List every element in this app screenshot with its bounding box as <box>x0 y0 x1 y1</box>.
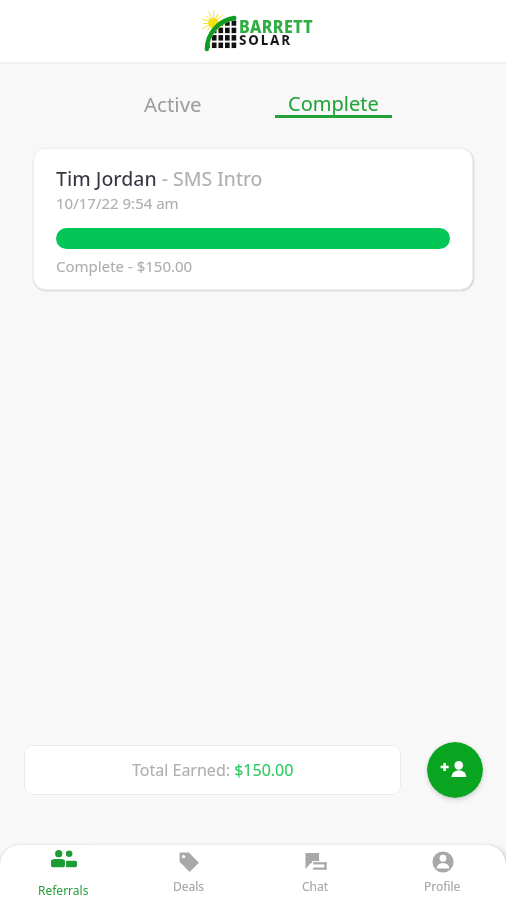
staticText: BARRETT <box>239 15 314 39</box>
staticText: Chat <box>302 878 329 894</box>
button[interactable]: Chat <box>252 845 379 900</box>
button[interactable]: Active <box>93 64 253 127</box>
staticText: Referrals <box>38 882 89 898</box>
staticText: Complete - $150.00 <box>56 256 193 276</box>
staticText: SOLAR <box>239 29 292 49</box>
button[interactable]: Add referral <box>427 742 483 798</box>
staticText: Total Earned: $150.00 <box>132 759 294 781</box>
button[interactable]: Tim Jordan - SMS Intro <box>33 148 473 290</box>
button[interactable]: Deals <box>126 845 252 900</box>
button[interactable]: Total Earned: $150.00 <box>24 745 401 795</box>
staticText: 10/17/22 9:54 am <box>56 193 179 213</box>
staticText: Profile <box>424 878 461 894</box>
button[interactable]: Referrals <box>0 845 126 900</box>
staticText: Complete <box>288 90 379 117</box>
staticText: Deals <box>173 878 205 894</box>
staticText: Active <box>144 90 202 118</box>
button[interactable]: Complete <box>253 64 413 127</box>
button[interactable]: Profile <box>379 845 506 900</box>
staticText: Tim Jordan - SMS Intro <box>56 165 263 192</box>
